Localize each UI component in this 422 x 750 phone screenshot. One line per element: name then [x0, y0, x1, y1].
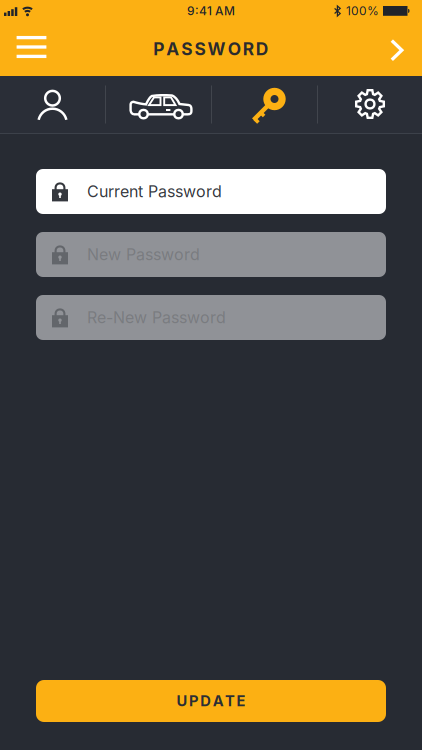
button[interactable]: U — [36, 680, 386, 722]
button[interactable] — [390, 37, 422, 60]
button[interactable] — [106, 76, 211, 133]
button[interactable]: New Password — [36, 232, 386, 277]
staticText: P — [189, 692, 199, 710]
button[interactable] — [0, 76, 105, 133]
staticText: S — [194, 39, 205, 59]
button[interactable]: Current Password — [36, 169, 386, 214]
button[interactable] — [212, 76, 317, 133]
staticText: New Password — [87, 245, 200, 264]
staticText: 100% — [346, 4, 379, 18]
staticText: R — [243, 39, 254, 59]
button[interactable]: Re-New Password — [36, 295, 386, 340]
staticText: W — [208, 39, 226, 59]
staticText: Re-New Password — [87, 308, 226, 327]
staticText: D — [200, 692, 211, 710]
staticText: E — [236, 692, 245, 710]
button[interactable] — [0, 38, 48, 60]
staticText: U — [176, 692, 187, 710]
staticText: T — [225, 692, 235, 710]
staticText: D — [256, 39, 269, 59]
staticText: O — [228, 39, 241, 59]
staticText: P — [153, 39, 164, 59]
staticText: S — [181, 39, 192, 59]
staticText: A — [166, 39, 179, 59]
staticText: Current Password — [87, 182, 222, 201]
staticText: 9:41 AM — [187, 4, 235, 18]
button[interactable] — [318, 76, 422, 133]
staticText: A — [213, 692, 224, 710]
